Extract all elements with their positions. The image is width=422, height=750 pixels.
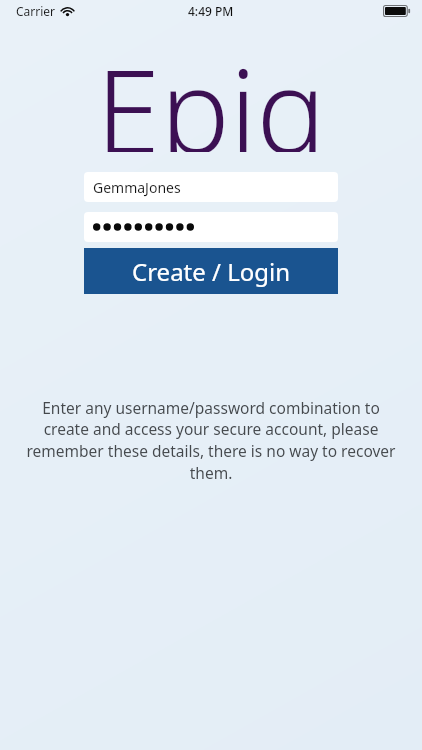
button[interactable]: Create / Login — [84, 248, 338, 294]
staticText: Epiq — [96, 30, 327, 152]
button[interactable] — [84, 212, 338, 242]
staticText: Create / Login — [132, 255, 291, 288]
staticText: GemmaJones — [93, 178, 181, 197]
staticText: Carrier — [16, 3, 56, 19]
button[interactable]: GemmaJones — [84, 172, 338, 202]
staticText: 4:49 PM — [188, 3, 234, 19]
staticText: Enter any username/password combination … — [22, 397, 400, 484]
